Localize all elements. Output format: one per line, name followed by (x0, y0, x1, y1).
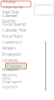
button[interactable]: Products/Services (0, 69, 32, 75)
button[interactable]: utility (0, 75, 32, 81)
staticText: utility (2, 75, 11, 81)
button[interactable]: Fiscal Quarter (0, 21, 32, 27)
button[interactable]: Display columns by (1, 1, 31, 7)
button[interactable]: Fiscal Years (0, 33, 32, 39)
staticText: Calendar Quarter (2, 13, 18, 23)
button[interactable]: Total Only (0, 9, 32, 15)
staticText: Total Only (2, 9, 19, 15)
staticText: Products/Services (2, 67, 18, 77)
staticText: Customers (2, 39, 22, 45)
button[interactable]: Classes (5, 63, 26, 69)
button[interactable]: Calendar Year (0, 27, 32, 33)
staticText: Vendors (2, 45, 16, 51)
staticText: Calendar Year (2, 27, 27, 33)
button[interactable]: Calendar Quarter (0, 15, 32, 21)
staticText: Fiscal Years (2, 33, 23, 39)
staticText: Classes (7, 63, 21, 69)
staticText: Ungrouped expenses (2, 79, 21, 89)
button[interactable]: Locations (0, 57, 32, 63)
button[interactable]: Ungrouped expenses (0, 81, 32, 87)
staticText: Display columns by (2, 0, 22, 9)
button[interactable]: Employees (0, 51, 32, 57)
button[interactable]: Vendors (0, 45, 32, 51)
staticText: Fiscal Quarter (2, 21, 27, 27)
staticText: Locations (2, 57, 18, 63)
button[interactable]: Customers (0, 39, 32, 45)
staticText: Employees (2, 51, 21, 57)
